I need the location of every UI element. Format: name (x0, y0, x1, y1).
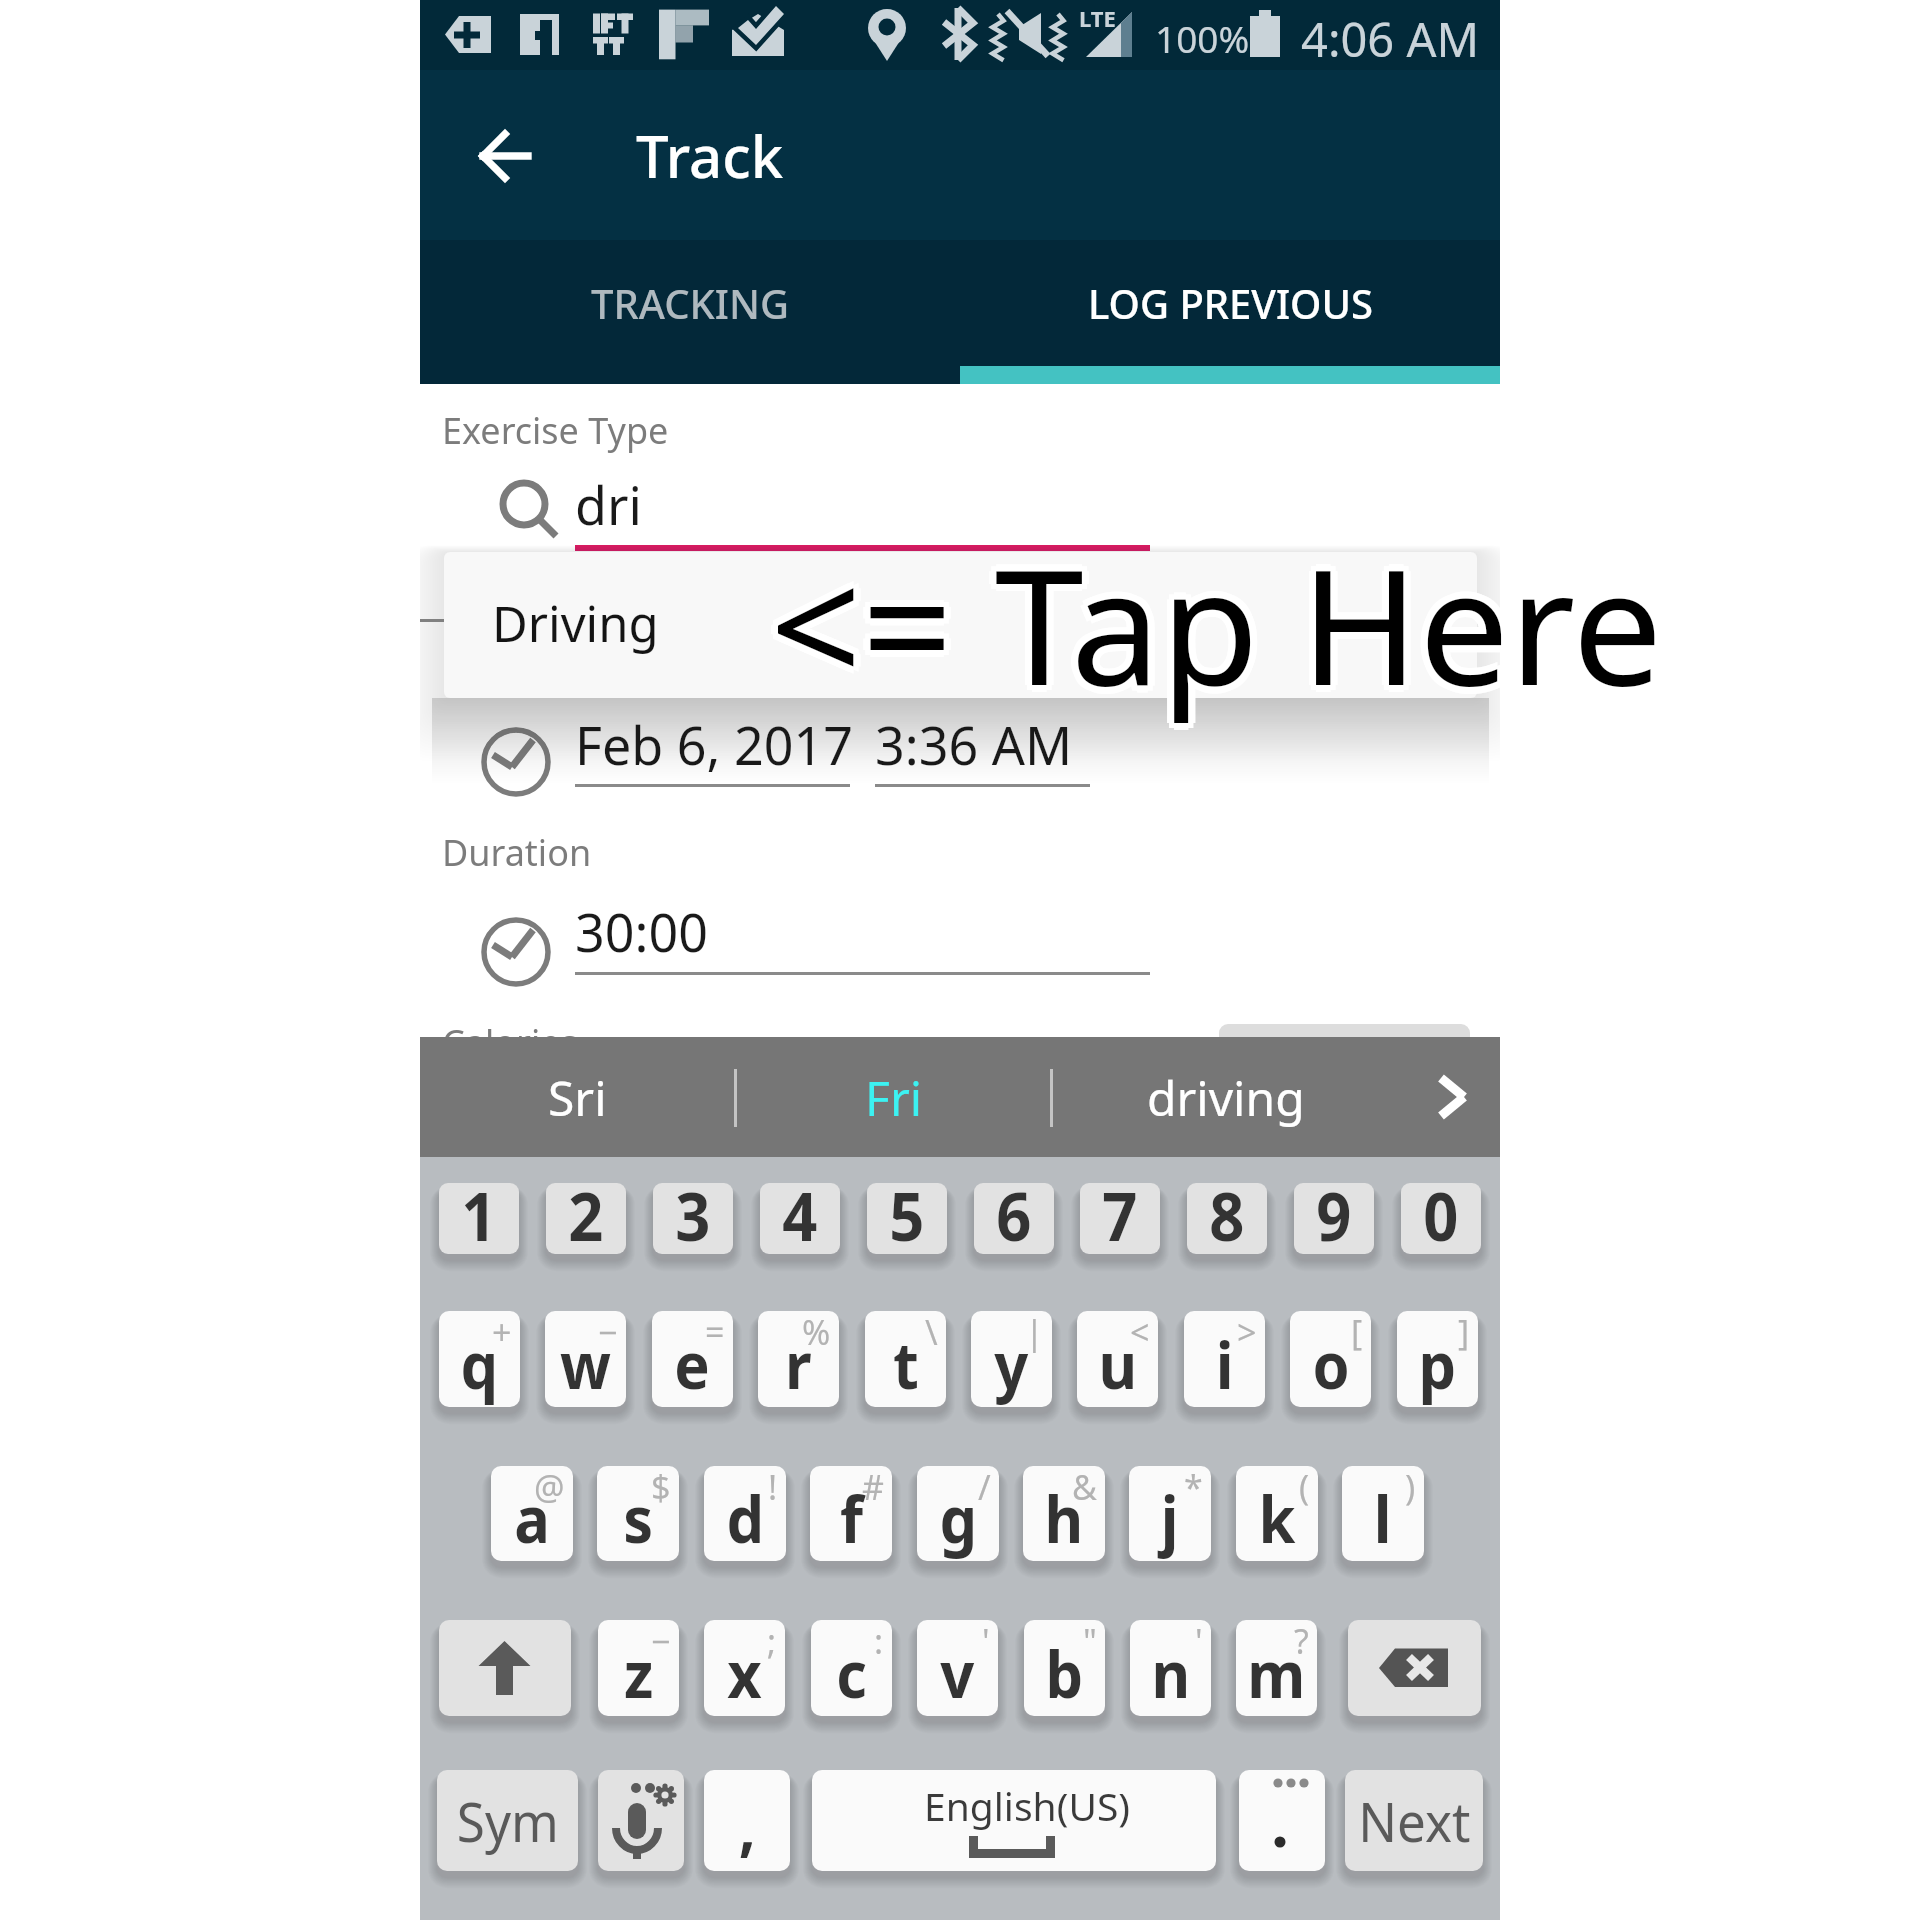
staticText: Duration (442, 828, 592, 877)
staticText: r (785, 1321, 812, 1408)
button[interactable] (758, 1311, 839, 1407)
staticText: Track (636, 116, 784, 195)
button[interactable] (1023, 1466, 1105, 1561)
button[interactable]: More suggestions (1398, 1037, 1500, 1157)
button[interactable]: LOG PREVIOUS (960, 240, 1500, 366)
button[interactable] (1290, 1311, 1371, 1407)
button[interactable] (704, 1466, 786, 1561)
button[interactable] (1397, 1311, 1478, 1407)
staticText: <= Tap Here (770, 521, 1663, 739)
button[interactable] (437, 1770, 578, 1871)
staticText: ! (768, 1464, 778, 1510)
button[interactable] (597, 1466, 679, 1561)
staticText: v (940, 1630, 975, 1717)
button[interactable]: driving (1053, 1037, 1398, 1157)
button[interactable] (917, 1466, 999, 1561)
staticText: 8 (1209, 1170, 1245, 1260)
button[interactable]: Back (444, 86, 564, 206)
staticText: Sym (457, 1783, 559, 1858)
button[interactable] (760, 1183, 840, 1254)
button[interactable] (1345, 1770, 1483, 1871)
staticText: <= Tap Here (777, 514, 1670, 732)
staticText: 6 (996, 1170, 1032, 1260)
button[interactable] (598, 1620, 679, 1716)
staticText: ; (767, 1618, 777, 1664)
staticText: TRACKING (591, 276, 790, 330)
staticText: c (836, 1630, 868, 1717)
button[interactable] (974, 1183, 1054, 1254)
button[interactable]: Backspace (1348, 1620, 1481, 1716)
staticText: b (1045, 1630, 1083, 1717)
button[interactable] (545, 1311, 626, 1407)
button[interactable] (971, 1311, 1052, 1407)
staticText: t (893, 1321, 919, 1408)
button[interactable] (867, 1183, 947, 1254)
button[interactable] (865, 1311, 946, 1407)
button[interactable] (704, 1620, 785, 1716)
staticText: ' (982, 1618, 990, 1664)
button[interactable]: Voice input (598, 1770, 684, 1871)
button[interactable] (1342, 1466, 1424, 1561)
staticText: e (674, 1321, 711, 1408)
staticText: Fri (865, 1065, 923, 1130)
button[interactable] (1236, 1620, 1317, 1716)
staticText: <= Tap Here (775, 519, 1668, 737)
button[interactable] (1294, 1183, 1374, 1254)
staticText: Driving (492, 590, 659, 657)
button[interactable]: English(US) (812, 1770, 1216, 1871)
button[interactable] (546, 1183, 626, 1254)
button[interactable] (1184, 1311, 1265, 1407)
staticText: LOG PREVIOUS (1088, 276, 1373, 330)
staticText: s (623, 1475, 654, 1562)
staticText: − (651, 1618, 671, 1664)
staticText: d (726, 1475, 764, 1562)
button[interactable] (811, 1620, 892, 1716)
staticText: : (874, 1618, 884, 1664)
button[interactable] (704, 1770, 790, 1871)
button[interactable]: Fri (737, 1037, 1050, 1157)
button[interactable]: Shift (439, 1620, 571, 1716)
staticText: ? (1294, 1618, 1309, 1664)
staticText: > (1237, 1309, 1257, 1355)
staticText: i (1216, 1321, 1234, 1408)
button[interactable] (491, 1466, 573, 1561)
button[interactable] (439, 1311, 520, 1407)
staticText: $ (651, 1464, 671, 1510)
staticText: 4 (782, 1170, 818, 1260)
staticText: o (1312, 1321, 1350, 1408)
staticText: | (1025, 1309, 1044, 1355)
button[interactable]: Period and more (1239, 1770, 1325, 1871)
button[interactable] (1024, 1620, 1105, 1716)
staticText: * (1184, 1464, 1203, 1510)
staticText: <= Tap Here (765, 509, 1658, 727)
staticText: < (1130, 1309, 1150, 1355)
button[interactable]: Sri (420, 1037, 734, 1157)
staticText: Feb 6, 2017 (575, 709, 853, 780)
button[interactable] (1236, 1466, 1318, 1561)
staticText: p (1418, 1321, 1456, 1408)
staticText: 7 (1102, 1170, 1138, 1260)
button[interactable] (1401, 1183, 1481, 1254)
staticText: Calories (442, 1018, 578, 1067)
button[interactable] (653, 1183, 733, 1254)
staticText: l (1374, 1475, 1392, 1562)
staticText: # (862, 1464, 884, 1510)
button[interactable] (652, 1311, 733, 1407)
staticText: 3 (675, 1170, 711, 1260)
staticText: y (994, 1321, 1029, 1408)
button[interactable]: TRACKING (420, 240, 960, 366)
staticText: k (1258, 1475, 1296, 1562)
button[interactable] (1077, 1311, 1158, 1407)
button[interactable] (1080, 1183, 1160, 1254)
button[interactable]: Driving (444, 552, 1477, 698)
button[interactable] (1129, 1466, 1211, 1561)
button[interactable] (1187, 1183, 1267, 1254)
staticText: <= Tap Here (763, 514, 1656, 732)
button[interactable] (810, 1466, 892, 1561)
button[interactable] (917, 1620, 998, 1716)
staticText: g (939, 1475, 977, 1562)
staticText: / (978, 1464, 991, 1510)
staticText: ( (1299, 1464, 1310, 1510)
button[interactable] (439, 1183, 519, 1254)
button[interactable] (1130, 1620, 1211, 1716)
